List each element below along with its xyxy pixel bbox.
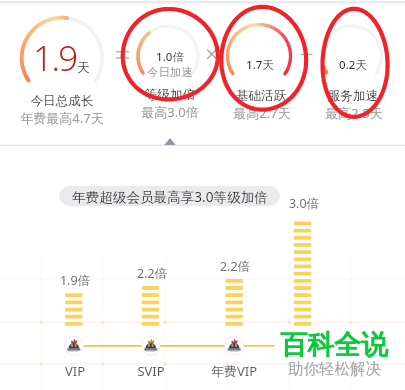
button[interactable]: 年费超级会员最高享3.0等级加倍	[59, 186, 280, 206]
staticText: 年费超级会员最高享3.0等级加倍	[72, 187, 268, 206]
staticText: 年费最高4.7天	[0, 109, 152, 127]
staticText: 1.9倍	[0, 272, 165, 289]
staticText: SVIP	[61, 362, 241, 380]
staticText: 2.2倍	[62, 265, 242, 282]
staticText: 1.9	[33, 34, 77, 82]
staticText: 最高2.5天	[264, 104, 405, 122]
staticText: 3.0倍	[214, 195, 394, 212]
staticText: 年费VIP	[144, 362, 324, 380]
staticText: 百科全说	[280, 328, 388, 362]
staticText: 0.2天	[263, 57, 405, 73]
staticText: 最高2.7天	[172, 104, 352, 122]
staticText: 服务加速	[263, 88, 405, 104]
staticText: 最高3.0倍	[80, 103, 260, 121]
staticText: 2.2倍	[145, 258, 325, 275]
staticText: 1.0倍	[80, 49, 260, 65]
staticText: VIP	[0, 362, 165, 380]
staticText: 今日总成长	[0, 93, 152, 109]
staticText: 天	[77, 60, 90, 76]
staticText: 助你轻松解决	[288, 359, 381, 379]
staticText: 基础活跃	[171, 88, 351, 104]
staticText: 1.7天	[170, 57, 350, 73]
staticText: 今日加速	[80, 65, 260, 79]
staticText: 等级加倍	[80, 87, 260, 103]
